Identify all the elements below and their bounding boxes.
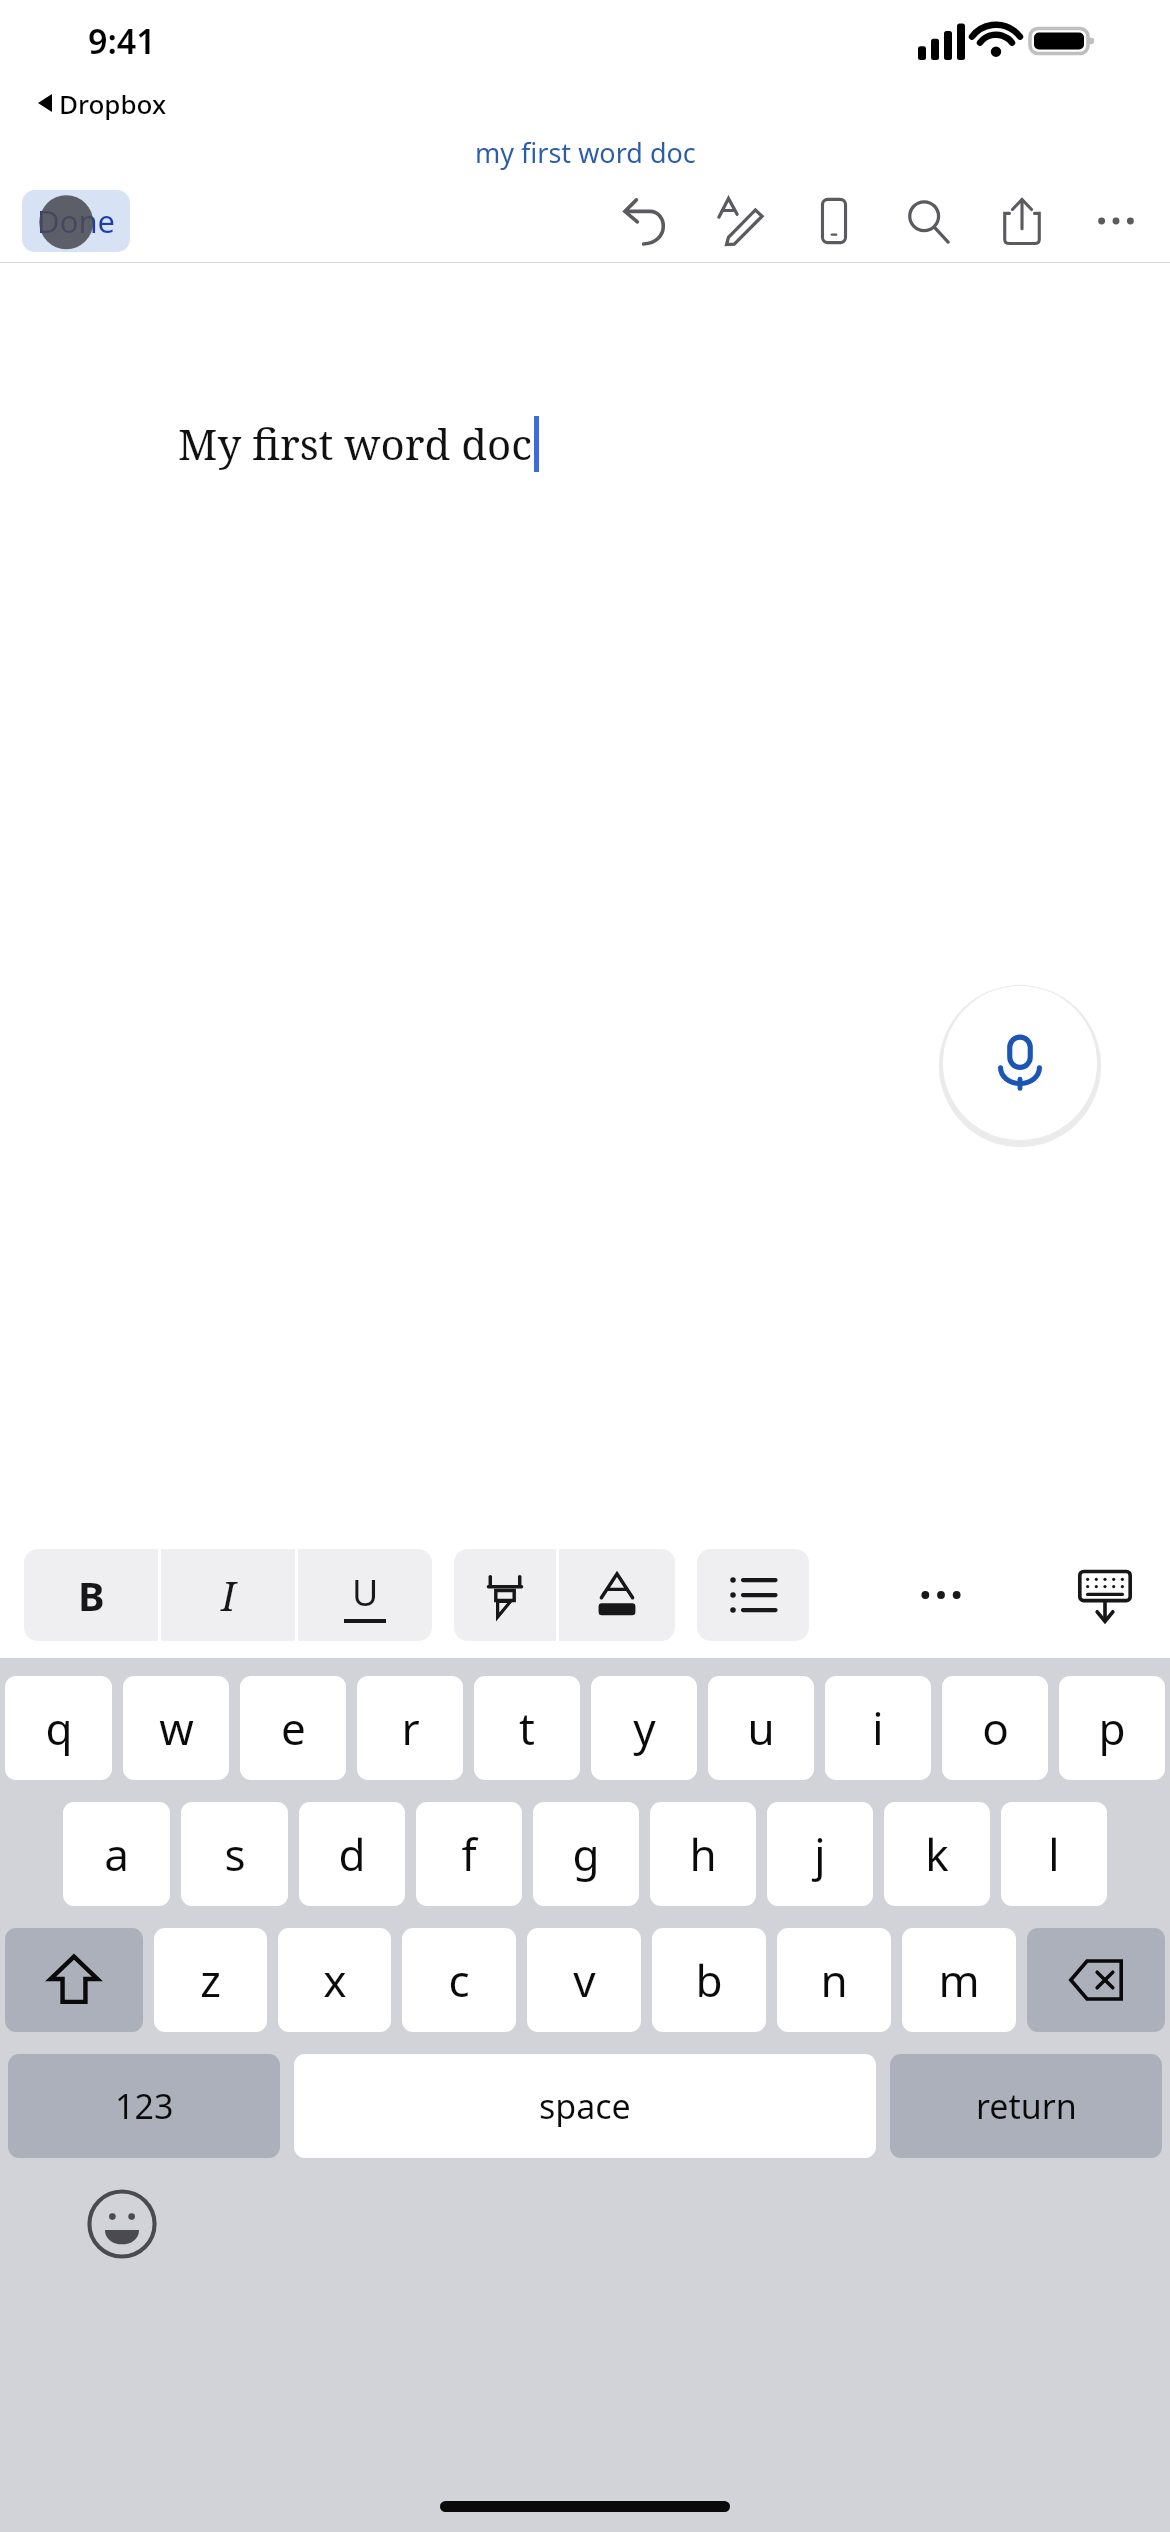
button[interactable]: p	[1059, 1676, 1165, 1780]
staticText: 123	[115, 2083, 174, 2129]
button[interactable]: Draw	[704, 185, 776, 257]
staticText: x	[323, 1950, 347, 2010]
button[interactable]: Backspace	[1027, 1928, 1165, 2032]
button[interactable]: Underline	[298, 1549, 432, 1641]
staticText: U	[352, 1568, 379, 1617]
staticText: o	[982, 1698, 1009, 1758]
button[interactable]: Emoji	[82, 2184, 162, 2264]
staticText: I	[221, 1568, 236, 1622]
button[interactable]: h	[650, 1802, 756, 1906]
button[interactable]: l	[1001, 1802, 1107, 1906]
button[interactable]: Highlight	[454, 1549, 556, 1641]
staticText: space	[539, 2083, 631, 2129]
button[interactable]: z	[154, 1928, 267, 2032]
button[interactable]: g	[533, 1802, 639, 1906]
button[interactable]: b	[652, 1928, 766, 2032]
staticText: p	[1098, 1698, 1126, 1758]
button[interactable]: n	[777, 1928, 891, 2032]
button[interactable]: Italic	[161, 1549, 295, 1641]
button[interactable]: m	[902, 1928, 1016, 2032]
button[interactable]: Mobile view	[798, 185, 870, 257]
staticText: t	[519, 1698, 535, 1758]
button[interactable]: Dictate	[938, 981, 1102, 1145]
staticText: d	[338, 1824, 366, 1884]
button[interactable]: c	[402, 1928, 516, 2032]
staticText: g	[572, 1824, 600, 1884]
staticText: My first word doc	[178, 415, 532, 472]
staticText: z	[200, 1950, 221, 2010]
staticText: return	[976, 2083, 1077, 2129]
button[interactable]: Bold	[24, 1549, 158, 1641]
button[interactable]: k	[884, 1802, 990, 1906]
button[interactable]: Dropbox	[38, 82, 1170, 124]
button[interactable]: Search	[892, 185, 964, 257]
button[interactable]: Hide keyboard	[1064, 1554, 1146, 1636]
button[interactable]: y	[591, 1676, 697, 1780]
staticText: l	[1048, 1824, 1060, 1884]
staticText: a	[104, 1824, 129, 1884]
staticText: j	[814, 1824, 826, 1884]
staticText: n	[820, 1950, 848, 2010]
button[interactable]: More formatting	[902, 1556, 980, 1634]
staticText: v	[573, 1950, 596, 2010]
button[interactable]: Bullet list	[697, 1549, 809, 1641]
button[interactable]: 123	[8, 2054, 280, 2158]
button[interactable]: w	[123, 1676, 229, 1780]
staticText: r	[401, 1698, 420, 1758]
button[interactable]: r	[357, 1676, 463, 1780]
staticText: c	[448, 1950, 470, 2010]
staticText: q	[45, 1698, 73, 1758]
staticText: k	[925, 1824, 949, 1884]
button[interactable]: f	[416, 1802, 522, 1906]
staticText: s	[224, 1824, 246, 1884]
button[interactable]: q	[5, 1676, 112, 1780]
button[interactable]: j	[767, 1802, 873, 1906]
button[interactable]: o	[942, 1676, 1048, 1780]
button[interactable]: t	[474, 1676, 580, 1780]
staticText: B	[78, 1568, 105, 1622]
staticText: u	[747, 1698, 775, 1758]
button[interactable]: Font color	[559, 1549, 675, 1641]
button[interactable]: i	[825, 1676, 931, 1780]
staticText: 9:41	[88, 18, 156, 64]
button[interactable]: Shift	[5, 1928, 143, 2032]
button[interactable]: More options	[1080, 185, 1152, 257]
staticText: i	[872, 1698, 884, 1758]
staticText: w	[159, 1698, 194, 1758]
staticText: e	[281, 1698, 306, 1758]
staticText: y	[633, 1698, 656, 1758]
staticText: b	[695, 1950, 723, 2010]
button[interactable]: d	[299, 1802, 405, 1906]
button[interactable]: u	[708, 1676, 814, 1780]
button[interactable]: s	[181, 1802, 288, 1906]
button[interactable]: v	[527, 1928, 641, 2032]
button[interactable]: e	[240, 1676, 346, 1780]
button[interactable]: a	[63, 1802, 170, 1906]
staticText: h	[689, 1824, 717, 1884]
staticText: f	[461, 1824, 477, 1884]
staticText: Done	[37, 200, 116, 242]
button[interactable]: space	[294, 2054, 876, 2158]
staticText: m	[938, 1950, 980, 2010]
button[interactable]: Undo	[610, 185, 682, 257]
staticText: Dropbox	[59, 86, 167, 121]
button[interactable]: Share	[986, 185, 1058, 257]
button[interactable]: return	[890, 2054, 1162, 2158]
button[interactable]: Done	[22, 190, 130, 252]
staticText: my first word doc	[475, 134, 696, 171]
button[interactable]: x	[278, 1928, 391, 2032]
